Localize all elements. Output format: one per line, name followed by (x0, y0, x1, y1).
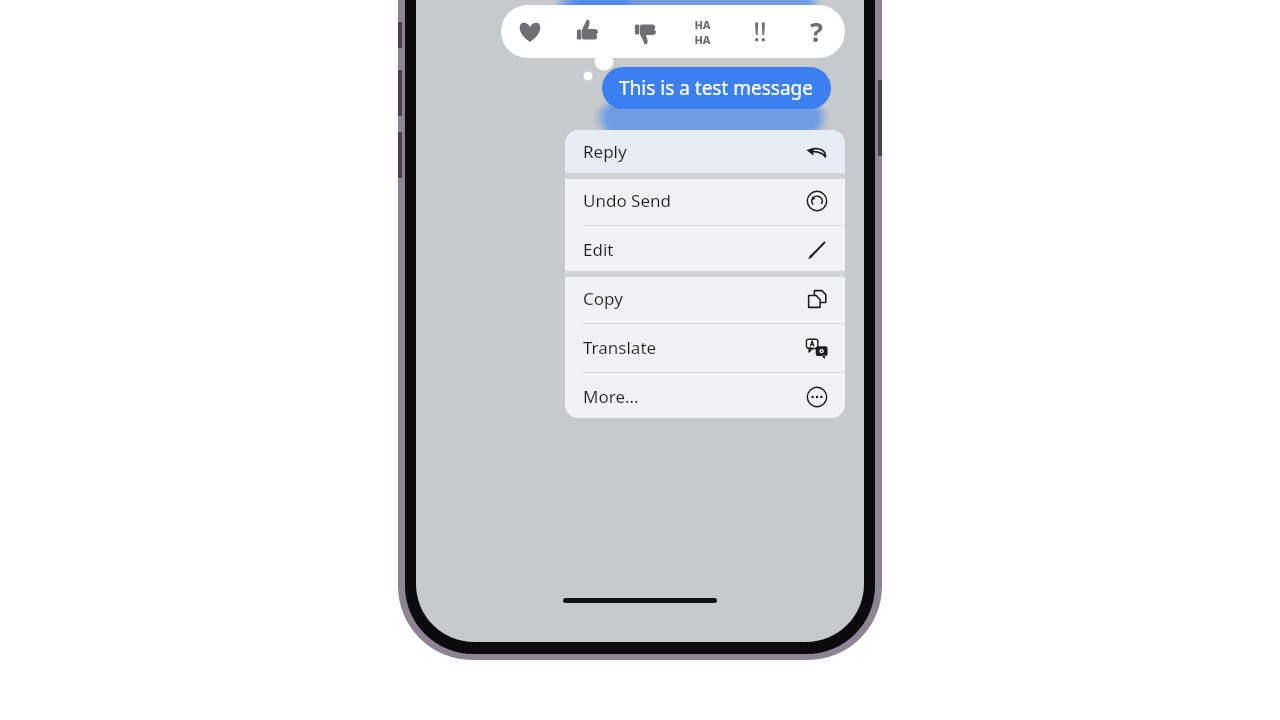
staticText: Translate (583, 336, 657, 359)
staticText: This is a test message (619, 75, 814, 101)
staticText: Reply (583, 140, 627, 163)
button[interactable]: Like (559, 5, 617, 58)
button[interactable]: Question (788, 5, 845, 58)
staticText: Copy (583, 287, 623, 310)
button[interactable]: Dislike (617, 5, 674, 58)
staticText: HA (694, 17, 711, 32)
staticText: More... (583, 385, 639, 408)
staticText: Undo Send (583, 189, 671, 212)
button[interactable]: Copy (565, 277, 845, 320)
staticText: HA (694, 32, 711, 47)
staticText: Edit (583, 238, 614, 261)
button[interactable]: Translate (565, 326, 845, 369)
button[interactable]: More... (565, 375, 845, 418)
button[interactable]: Love (501, 5, 559, 58)
button[interactable]: Edit (565, 228, 845, 271)
button[interactable]: Reply (565, 130, 845, 173)
staticText: ? (810, 13, 823, 50)
button[interactable]: Haha (674, 5, 731, 58)
button[interactable]: This is a test message (602, 67, 831, 109)
button[interactable]: Emphasize (731, 5, 788, 58)
button[interactable]: Undo Send (565, 179, 845, 222)
